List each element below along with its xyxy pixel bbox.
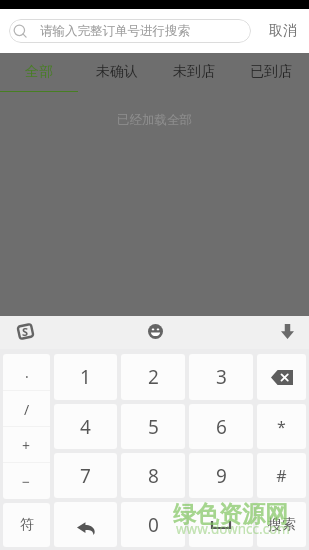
button[interactable]: 5 [121,404,185,449]
button[interactable]: * [257,404,306,449]
staticText: / [24,400,30,419]
staticText: 9 [216,463,227,489]
staticText: * [277,416,286,438]
staticText: 已到店 [250,63,292,81]
staticText: 符 [20,516,34,534]
button[interactable]: 符 [3,503,50,547]
staticText: 3 [216,364,227,390]
staticText: 6 [216,414,227,440]
staticText: 绿色资源网 [173,500,288,529]
button[interactable]: Emoji [145,321,165,341]
button[interactable]: 2 [121,354,185,400]
button[interactable]: 8 [121,453,185,498]
button[interactable]: 3 [189,354,253,400]
button[interactable]: − [3,463,50,499]
staticText: − [22,472,31,491]
button[interactable]: Return [54,502,117,547]
button[interactable]: 4 [54,404,117,449]
staticText: 7 [80,463,91,489]
button[interactable]: 搜索 [257,502,306,547]
staticText: 1 [80,364,91,390]
button[interactable]: 全部 [0,53,78,92]
button[interactable]: 6 [189,404,253,449]
button[interactable]: # [257,453,306,498]
staticText: S [22,324,29,339]
staticText: 4 [80,414,91,440]
button[interactable]: 未到店 [155,53,232,92]
staticText: 未确认 [96,63,138,81]
button[interactable]: Space [189,502,253,547]
button[interactable]: 1 [54,354,117,400]
button[interactable]: Hide keyboard [277,321,297,341]
staticText: 2 [148,364,159,390]
button[interactable]: 请输入完整订单号进行搜索 [9,19,251,43]
staticText: 请输入完整订单号进行搜索 [40,23,190,39]
staticText: 未到店 [173,63,215,81]
button[interactable]: 7 [54,453,117,498]
staticText: 5 [148,414,159,440]
staticText: 取消 [269,22,297,40]
staticText: 搜索 [268,516,296,534]
staticText: 0 [148,512,159,538]
button[interactable]: 未确认 [78,53,155,92]
button[interactable]: . [3,354,50,391]
staticText: . [25,363,29,382]
button[interactable]: Delete [257,354,306,400]
button[interactable]: + [3,427,50,463]
staticText: 全部 [25,63,53,81]
button[interactable]: 9 [189,453,253,498]
staticText: # [276,465,287,487]
button[interactable]: / [3,391,50,427]
staticText: 已经加载全部 [117,112,192,128]
button[interactable]: Input method [16,322,34,340]
button[interactable]: 取消 [251,9,309,53]
staticText: + [22,436,31,455]
button[interactable]: 0 [121,502,185,547]
button[interactable]: 已到店 [232,53,309,92]
staticText: www.downcc.com [176,520,290,538]
staticText: 8 [148,463,159,489]
